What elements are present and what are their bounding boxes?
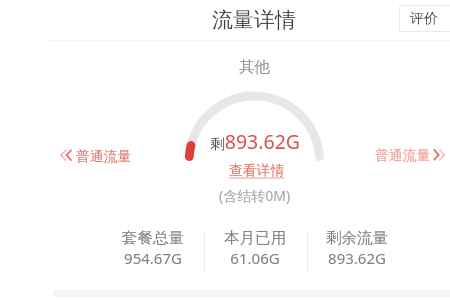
staticText: 其他 [239,57,270,77]
button[interactable]: 剩余流量 [302,228,412,272]
button[interactable]: 下一个 普通流量 [375,145,445,165]
staticText: 剩893.62G [210,128,300,155]
staticText: (含结转0M) [219,186,291,205]
staticText: 普通流量 [76,148,132,165]
button[interactable]: 套餐总量 [98,228,208,272]
staticText: 954.67G [98,248,208,268]
staticText: 评价 [410,10,438,28]
staticText: 剩余流量 [302,228,412,248]
staticText: 查看详情 [229,162,285,179]
staticText: 套餐总量 [98,228,208,248]
staticText: 普通流量 [375,147,431,164]
button[interactable]: 评价 [399,5,450,32]
staticText: 893.62G [302,248,412,268]
staticText: 61.06G [200,248,310,268]
button[interactable]: 上一个 普通流量 [55,146,132,166]
button[interactable]: 本月已用 [200,228,310,272]
staticText: 流量详情 [212,7,296,33]
button[interactable]: 查看详情 [229,162,285,179]
staticText: 本月已用 [200,228,310,248]
